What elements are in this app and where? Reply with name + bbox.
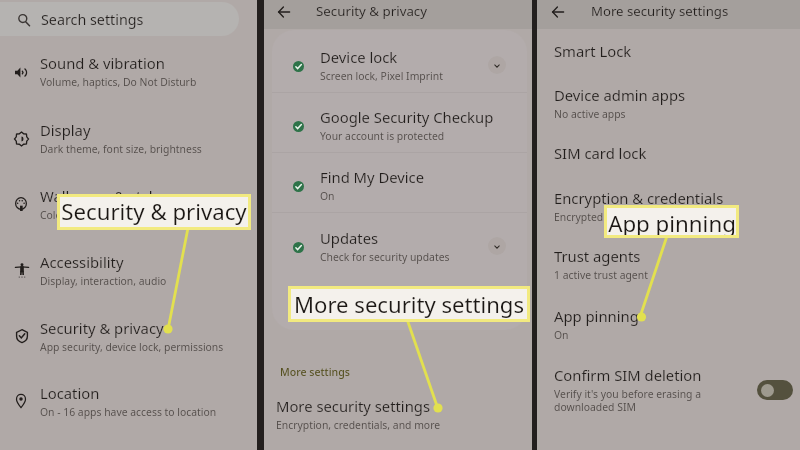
button[interactable]: Updates — [264, 228, 532, 264]
staticText: App pinning — [554, 306, 639, 326]
staticText: Check for security updates — [320, 250, 450, 264]
staticText: Search settings — [41, 10, 144, 29]
button[interactable]: SIM card lock — [537, 143, 800, 167]
staticText: Encrypted — [554, 210, 604, 224]
staticText: Security & privacy — [61, 196, 247, 226]
staticText: No active apps — [554, 107, 626, 121]
button[interactable] — [0, 2, 239, 36]
staticText: Updates — [320, 228, 379, 248]
staticText: Colors, themed app icons — [40, 208, 164, 222]
staticText: Verify it's you before erasing a downloa… — [554, 387, 702, 414]
staticText: More settings — [280, 365, 350, 379]
staticText: Device lock — [320, 47, 398, 67]
staticText: App pinning — [608, 208, 736, 235]
staticText: Security & privacy — [40, 318, 164, 338]
staticText: Screen lock, Pixel Imprint — [320, 69, 443, 83]
button[interactable]: Google Security Checkup — [264, 107, 532, 143]
staticText: 1 active trust agent — [554, 268, 648, 282]
button[interactable]: Trust agents — [537, 246, 800, 282]
staticText: On — [554, 328, 569, 342]
staticText: Your account is protected — [320, 129, 445, 143]
staticText: Display, interaction, audio — [40, 274, 167, 288]
staticText: Accessibility — [40, 252, 124, 272]
staticText: On - 16 apps have access to location — [40, 405, 217, 419]
button[interactable]: Back — [271, 0, 297, 25]
staticText: Find My Device — [320, 167, 425, 187]
button[interactable]: Security & privacy — [0, 318, 257, 356]
staticText: SIM card lock — [554, 143, 647, 163]
staticText: Display — [40, 120, 91, 140]
staticText: Wallpaper & style — [40, 186, 162, 206]
button[interactable]: Accessibility — [0, 252, 257, 290]
button[interactable]: Expand — [488, 237, 506, 255]
staticText: Sound & vibration — [40, 53, 165, 73]
staticText: Encryption & credentials — [554, 188, 724, 208]
button[interactable]: Device lock — [264, 47, 532, 83]
staticText: Location — [40, 383, 100, 403]
staticText: App security, device lock, permissions — [40, 340, 224, 354]
button[interactable]: Find My Device — [264, 167, 532, 203]
button[interactable]: Confirm SIM deletion toggle — [757, 380, 793, 400]
button[interactable]: Display — [0, 120, 257, 158]
button[interactable]: Encryption & credentials — [537, 188, 800, 224]
button[interactable]: Smart Lock — [537, 41, 800, 65]
staticText: Smart Lock — [554, 41, 632, 61]
staticText: More security settings — [294, 289, 524, 319]
button[interactable]: Expand — [488, 56, 506, 74]
button[interactable]: Location — [0, 383, 257, 421]
staticText: On — [320, 189, 335, 203]
button[interactable]: Device admin apps — [537, 85, 800, 121]
button[interactable]: App pinning — [537, 306, 800, 342]
staticText: Security & privacy — [316, 2, 428, 20]
button[interactable]: Sound & vibration — [0, 53, 257, 91]
staticText: Google Security Checkup — [320, 107, 494, 127]
button[interactable]: Confirm SIM deletion — [537, 365, 800, 419]
button[interactable]: More security settings — [264, 396, 532, 434]
staticText: Dark theme, font size, brightness — [40, 142, 202, 156]
staticText: More security settings — [276, 396, 430, 416]
staticText: Trust agents — [554, 246, 641, 266]
staticText: Volume, haptics, Do Not Disturb — [40, 75, 197, 89]
staticText: More security settings — [591, 2, 729, 20]
staticText: Encryption, credentials, and more — [276, 418, 441, 432]
button[interactable]: Wallpaper & style — [0, 186, 257, 224]
staticText: Device admin apps — [554, 85, 686, 105]
button[interactable]: Back — [545, 0, 571, 25]
staticText: Confirm SIM deletion — [554, 365, 702, 385]
